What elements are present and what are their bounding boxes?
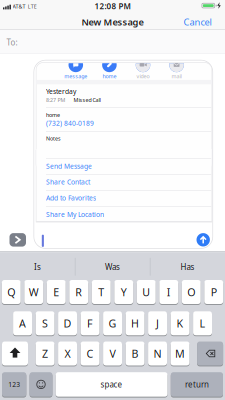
staticText: A — [19, 316, 26, 330]
button[interactable]: H — [0, 0, 225, 400]
staticText: New Message — [81, 16, 143, 28]
button[interactable]: J — [0, 0, 225, 400]
staticText: video — [136, 73, 149, 80]
button[interactable]: M — [0, 0, 225, 400]
button[interactable]: Send — [0, 0, 225, 400]
staticText: Notes — [46, 135, 61, 142]
button[interactable]: I — [0, 0, 225, 400]
staticText: E — [53, 285, 59, 299]
button[interactable]: C — [0, 0, 225, 400]
staticText: 123 — [8, 380, 20, 389]
button[interactable]: Z — [0, 0, 225, 400]
button[interactable]: L — [0, 0, 225, 400]
button[interactable]: S — [0, 0, 225, 400]
staticText: V — [109, 346, 115, 361]
button[interactable]: Add to Favorites — [0, 0, 225, 400]
button[interactable]: Was — [0, 0, 225, 400]
button[interactable]: Q — [0, 0, 225, 400]
staticText: home — [46, 111, 60, 118]
staticText: C — [86, 346, 93, 361]
staticText: D — [63, 316, 71, 330]
button[interactable]: A — [0, 0, 225, 400]
button[interactable]: E — [0, 0, 225, 400]
staticText: Z — [42, 346, 48, 361]
staticText: message — [64, 73, 87, 80]
button[interactable]: U — [0, 0, 225, 400]
button[interactable]: Has — [0, 0, 225, 400]
button[interactable]: Cancel — [0, 0, 225, 400]
staticText: Was — [105, 261, 120, 272]
staticText: 12:08 PM — [94, 1, 130, 11]
button[interactable] — [0, 0, 225, 400]
staticText: space — [101, 379, 123, 390]
staticText: U — [142, 285, 150, 299]
button[interactable]: O — [0, 0, 225, 400]
staticText: Y — [121, 285, 127, 299]
staticText: M — [175, 346, 185, 361]
button[interactable]: Is — [0, 0, 225, 400]
staticText: B — [131, 346, 138, 361]
staticText: L — [199, 316, 205, 330]
button[interactable]: Share Contact — [0, 0, 225, 400]
staticText: Has — [180, 261, 194, 272]
staticText: Share My Location — [46, 210, 104, 219]
button[interactable]: T — [0, 0, 225, 400]
staticText: home — [102, 73, 116, 80]
staticText: Add to Favorites — [46, 193, 96, 202]
staticText: (732) 840-0189 — [46, 119, 94, 128]
staticText: I — [167, 285, 171, 299]
staticText: K — [176, 316, 183, 330]
button[interactable]: P — [0, 0, 225, 400]
button[interactable]: (732) 840-0189 — [0, 0, 225, 400]
button[interactable]: F — [0, 0, 225, 400]
button[interactable]: G — [0, 0, 225, 400]
button[interactable]: W — [0, 0, 225, 400]
staticText: Missed Call — [73, 96, 100, 103]
staticText: X — [64, 346, 70, 361]
staticText: Q — [7, 285, 15, 299]
button[interactable]: Y — [0, 0, 225, 400]
button[interactable]: K — [0, 0, 225, 400]
button[interactable]: 123 — [0, 0, 225, 400]
button[interactable] — [0, 0, 225, 400]
staticText: J — [156, 316, 159, 330]
button[interactable]: B — [0, 0, 225, 400]
staticText: Share Contact — [46, 178, 90, 186]
staticText: Yesterday — [46, 87, 76, 96]
button[interactable]: Share My Location — [0, 0, 225, 400]
button[interactable]: D — [0, 0, 225, 400]
staticText: Cancel — [183, 16, 211, 28]
staticText: 8:27 — [46, 96, 56, 103]
staticText: Is — [34, 261, 41, 272]
staticText: LTE — [28, 3, 37, 10]
staticText: F — [87, 316, 93, 330]
staticText: R — [75, 285, 82, 299]
staticText: N — [153, 346, 161, 361]
staticText: AT&T — [13, 3, 26, 10]
button[interactable]: R — [0, 0, 225, 400]
button[interactable]: X — [0, 0, 225, 400]
staticText: Send Message — [46, 162, 92, 171]
button[interactable]: V — [0, 0, 225, 400]
staticText: H — [131, 316, 139, 330]
staticText: G — [108, 316, 116, 330]
staticText: P — [211, 285, 217, 299]
button[interactable]: Send Message — [0, 0, 225, 400]
button[interactable]: Expand — [0, 0, 225, 400]
staticText: S — [42, 316, 48, 330]
button[interactable] — [0, 0, 225, 400]
button[interactable]: N — [0, 0, 225, 400]
staticText: return — [185, 379, 209, 390]
staticText: O — [187, 285, 195, 299]
button[interactable]: return — [0, 0, 225, 400]
staticText: PM — [57, 96, 65, 103]
staticText: mail — [172, 73, 182, 80]
staticText: W — [29, 285, 39, 299]
staticText: To: — [6, 37, 17, 48]
staticText: T — [98, 285, 104, 299]
button[interactable]: space — [0, 0, 225, 400]
